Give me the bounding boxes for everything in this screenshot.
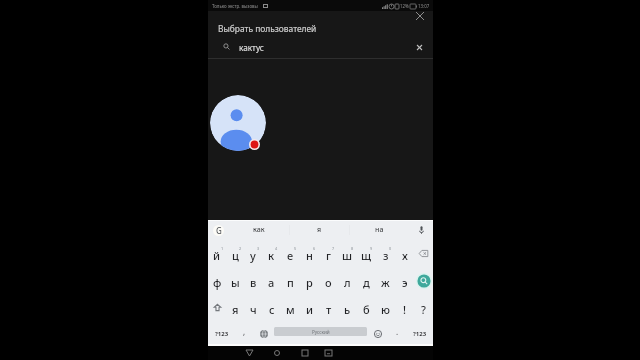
button[interactable]: Shift: [208, 294, 226, 321]
staticText: б: [363, 302, 370, 317]
button[interactable]: ?123: [406, 321, 433, 346]
button[interactable]: д: [357, 267, 376, 294]
button[interactable]: Close: [411, 7, 428, 24]
button[interactable]: э: [395, 267, 414, 294]
staticText: я: [317, 225, 322, 235]
button[interactable]: я: [226, 294, 244, 321]
staticText: на: [375, 225, 384, 235]
staticText: з: [383, 248, 389, 263]
button[interactable]: 1: [208, 240, 226, 267]
button[interactable]: Contact avatar: [210, 95, 266, 151]
staticText: 5: [294, 246, 297, 251]
button[interactable]: Backspace: [414, 240, 433, 267]
staticText: 8: [351, 246, 354, 251]
button[interactable]: ю: [376, 294, 395, 321]
staticText: х: [402, 248, 408, 263]
button[interactable]: Русский: [274, 327, 367, 336]
staticText: м: [286, 302, 295, 317]
staticText: !: [403, 302, 407, 317]
staticText: 1: [221, 246, 224, 251]
staticText: ,: [243, 326, 246, 337]
button[interactable]: 9: [357, 240, 376, 267]
button[interactable]: Change language: [253, 321, 274, 346]
staticText: 0: [389, 246, 392, 251]
button[interactable]: Recent apps: [297, 348, 313, 358]
staticText: й: [213, 248, 221, 263]
button[interactable]: Google: [208, 220, 229, 240]
button[interactable]: 5: [281, 240, 300, 267]
button[interactable]: Back: [241, 348, 257, 358]
button[interactable]: ?: [414, 294, 433, 321]
button[interactable]: на: [350, 220, 409, 240]
button[interactable]: в: [244, 267, 262, 294]
staticText: 12%: [400, 3, 409, 9]
staticText: д: [363, 275, 370, 290]
staticText: я: [232, 302, 239, 317]
staticText: р: [306, 275, 313, 290]
button[interactable]: .: [388, 321, 406, 346]
staticText: Только экстр. вызовы: [212, 3, 258, 9]
staticText: н: [306, 248, 313, 263]
staticText: щ: [361, 248, 372, 263]
button[interactable]: 7: [319, 240, 338, 267]
button[interactable]: Hide keyboard: [320, 348, 336, 358]
staticText: ?123: [215, 330, 229, 338]
staticText: Русский: [312, 329, 330, 335]
staticText: .: [396, 326, 399, 337]
staticText: у: [250, 248, 256, 263]
staticText: п: [287, 275, 294, 290]
button[interactable]: Search: [414, 267, 433, 294]
staticText: ?: [421, 302, 426, 317]
staticText: к: [268, 248, 275, 263]
button[interactable]: ,: [235, 321, 253, 346]
button[interactable]: р: [300, 267, 319, 294]
button[interactable]: как: [229, 220, 289, 240]
button[interactable]: л: [338, 267, 357, 294]
button[interactable]: 8: [338, 240, 357, 267]
button[interactable]: ф: [208, 267, 226, 294]
button[interactable]: 3: [244, 240, 262, 267]
button[interactable]: х: [395, 240, 414, 267]
button[interactable]: ы: [226, 267, 244, 294]
staticText: 2: [239, 246, 242, 251]
staticText: ж: [381, 275, 390, 290]
button[interactable]: !: [395, 294, 414, 321]
staticText: ф: [213, 275, 222, 290]
staticText: 13:07: [418, 3, 430, 9]
staticText: 3: [257, 246, 260, 251]
staticText: G: [216, 225, 222, 236]
button[interactable]: п: [281, 267, 300, 294]
staticText: кактус: [239, 42, 264, 53]
button[interactable]: Voice input: [409, 220, 433, 240]
staticText: ш: [342, 248, 353, 263]
staticText: о: [325, 275, 332, 290]
button[interactable]: ь: [338, 294, 357, 321]
staticText: Выбрать пользователей: [218, 23, 317, 34]
button[interactable]: 0: [376, 240, 395, 267]
button[interactable]: о: [319, 267, 338, 294]
button[interactable]: 2: [226, 240, 244, 267]
button[interactable]: ч: [244, 294, 262, 321]
button[interactable]: ?123: [208, 321, 235, 346]
button[interactable]: б: [357, 294, 376, 321]
button[interactable]: Home: [269, 348, 285, 358]
staticText: и: [306, 302, 314, 317]
button[interactable]: ж: [376, 267, 395, 294]
button[interactable]: я: [290, 220, 349, 240]
button[interactable]: и: [300, 294, 319, 321]
button[interactable]: Clear search: [411, 39, 428, 56]
button[interactable]: т: [319, 294, 338, 321]
staticText: е: [287, 248, 294, 263]
staticText: ь: [344, 302, 351, 317]
button[interactable]: а: [262, 267, 281, 294]
staticText: э: [402, 275, 408, 290]
staticText: 6: [313, 246, 316, 251]
staticText: 9: [370, 246, 373, 251]
button[interactable]: 6: [300, 240, 319, 267]
button[interactable]: м: [281, 294, 300, 321]
button[interactable]: с: [262, 294, 281, 321]
button[interactable]: Emoji: [367, 321, 388, 346]
staticText: ю: [381, 302, 390, 317]
staticText: л: [344, 275, 351, 290]
button[interactable]: 4: [262, 240, 281, 267]
